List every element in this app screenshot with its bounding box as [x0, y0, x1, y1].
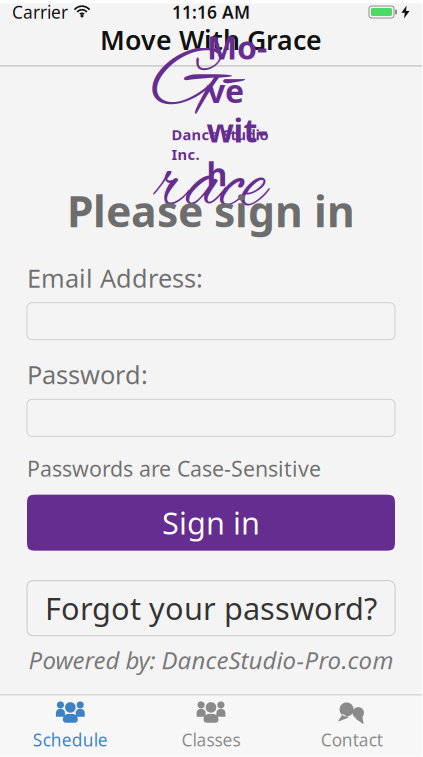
staticText: Contact	[321, 728, 383, 751]
staticText: Email Address:	[27, 261, 203, 295]
staticText: Forgot your password?	[45, 588, 377, 628]
staticText: Move	[207, 25, 267, 112]
staticText: Schedule	[33, 728, 108, 751]
staticText: Carrier	[12, 0, 68, 23]
staticText: Sign in	[162, 502, 260, 543]
button[interactable]: Sign in	[27, 495, 395, 551]
staticText: with	[206, 108, 267, 196]
staticText: Move With Grace	[100, 22, 322, 57]
staticText: Powered by: DanceStudio-Pro.com	[28, 644, 393, 676]
button[interactable]: Classes	[141, 695, 281, 751]
staticText: Grace	[153, 33, 264, 240]
staticText: Passwords are Case-Sensitive	[27, 454, 321, 483]
button[interactable]: Forgot your password?	[27, 581, 395, 636]
staticText: Please sign in	[67, 182, 355, 239]
button[interactable]: Contact	[281, 695, 422, 751]
button[interactable]: Schedule	[0, 695, 141, 751]
staticText: Password:	[27, 358, 148, 391]
staticText: Dance Studio Inc.	[171, 124, 268, 164]
staticText: 11:16 AM	[172, 0, 250, 23]
staticText: Classes	[181, 728, 240, 751]
